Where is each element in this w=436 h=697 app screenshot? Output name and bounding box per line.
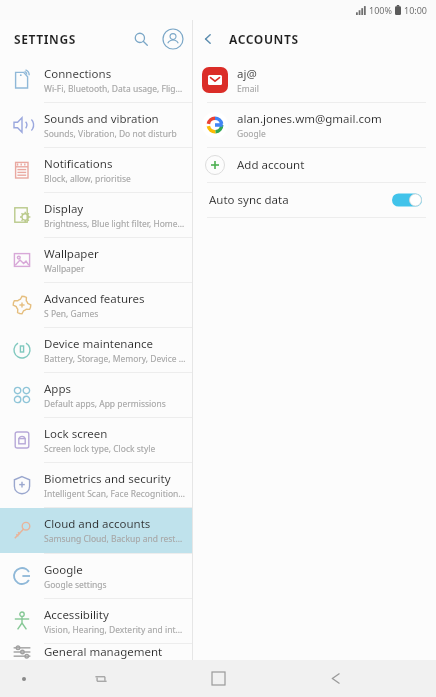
staticText: Auto sync data [209,192,289,208]
button[interactable]: Account [158,24,188,54]
staticText: Wi-Fi, Bluetooth, Data usage, Flight… [44,83,186,95]
staticText: Wallpaper [44,246,99,262]
staticText: Lock screen [44,426,108,442]
button[interactable]: Display [0,193,192,237]
button[interactable]: Auto sync data [193,183,436,217]
staticText: Add account [237,157,305,173]
button[interactable]: Search [126,24,156,54]
button[interactable]: Back [193,24,223,54]
button[interactable]: Biometrics and security [0,463,192,507]
button[interactable]: Device maintenance [0,328,192,372]
button[interactable]: Google [0,554,192,598]
button[interactable]: Back [315,660,355,697]
button[interactable]: Lock screen [0,418,192,462]
staticText: Google [44,562,83,578]
staticText: Biometrics and security [44,471,171,487]
staticText: aj@ [237,66,257,82]
staticText: ACCOUNTS [229,31,299,47]
staticText: Advanced features [44,291,145,307]
staticText: SETTINGS [14,31,76,47]
staticText: Email [237,83,259,95]
staticText: Sounds and vibration [44,111,159,127]
staticText: Notifications [44,156,113,172]
staticText: Google [237,128,266,140]
button[interactable]: Advanced features [0,283,192,327]
staticText: Samsung Cloud, Backup and restor… [44,533,186,545]
button[interactable]: Connections [0,58,192,102]
button[interactable]: Accessibility [0,599,192,643]
staticText: 100% [369,4,392,16]
staticText: Brightness, Blue light filter, Home sc… [44,218,186,230]
staticText: General management [44,644,163,660]
button[interactable]: Wallpaper [0,238,192,282]
staticText: alan.jones.wm@gmail.com [237,111,382,127]
staticText: S Pen, Games [44,308,99,320]
staticText: Wallpaper [44,263,85,275]
button[interactable]: Home [198,660,238,697]
button[interactable]: Recents [81,660,121,697]
button[interactable]: aj@ [193,58,436,102]
button[interactable]: Cloud and accounts [0,508,192,553]
staticText: Sounds, Vibration, Do not disturb [44,128,177,140]
button[interactable]: Apps [0,373,192,417]
button[interactable]: Notifications [0,148,192,192]
staticText: Vision, Hearing, Dexterity and intera… [44,624,186,636]
staticText: Accessibility [44,607,109,623]
staticText: Default apps, App permissions [44,398,166,410]
staticText: Battery, Storage, Memory, Device se… [44,353,186,365]
staticText: Screen lock type, Clock style [44,443,156,455]
button[interactable]: alan.jones.wm@gmail.com [193,103,436,147]
staticText: Cloud and accounts [44,516,151,532]
staticText: Intelligent Scan, Face Recognition,… [44,488,186,500]
button[interactable]: Add account [193,148,436,182]
staticText: Device maintenance [44,336,154,352]
button[interactable]: Sounds and vibration [0,103,192,147]
staticText: Display [44,201,84,217]
staticText: Apps [44,381,72,397]
staticText: Connections [44,66,112,82]
staticText: Google settings [44,579,107,591]
button[interactable]: General management [0,644,192,660]
staticText: 10:00 [404,4,428,16]
staticText: Block, allow, prioritise [44,173,131,185]
